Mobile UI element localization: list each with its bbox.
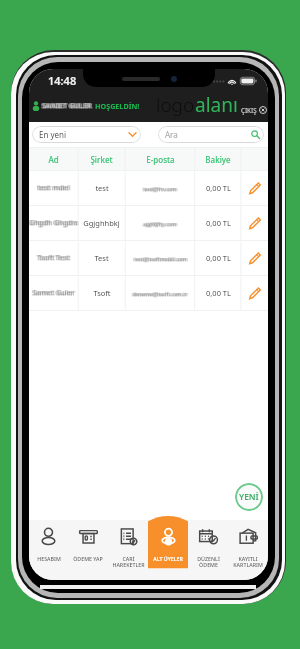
staticText: ajgfdjfty.com (143, 220, 177, 227)
staticText: deneme@tsoft.com.tr (133, 290, 189, 297)
staticText: Bakiye (205, 154, 231, 165)
staticText: ajgfdjfty.com (144, 221, 178, 228)
button[interactable]: Düzenle (246, 214, 264, 232)
staticText: test@frv.com (143, 185, 177, 192)
button[interactable]: Tsoft Test (29, 241, 268, 275)
staticText: test@tsoftmobil.com (133, 255, 186, 262)
staticText: SANIET GULER (41, 101, 91, 111)
staticText: test@frv.com (142, 186, 176, 193)
staticText: Tsoft Test (38, 253, 71, 263)
staticText: Ghgdh Ghgdra (30, 219, 79, 229)
staticText: Ghgdh Ghgdra (30, 218, 79, 228)
staticText: ajgfdjfty.com (142, 220, 176, 227)
button[interactable]: En yeni (32, 126, 141, 143)
staticText: 14:48 (48, 73, 77, 88)
staticText: Ghgdh Ghgdra (29, 218, 77, 228)
staticText: HOŞGELDİN! (95, 101, 140, 111)
staticText: ajgfdjfty.com (142, 221, 176, 228)
staticText: deneme@tsoft.com.tr (133, 290, 189, 297)
staticText: test mdel (38, 184, 71, 194)
staticText: Ghgdh Ghgdra (29, 218, 77, 228)
staticText: Ghgdh Ghgdra (29, 219, 77, 229)
staticText: test mdel (36, 184, 69, 194)
button[interactable]: ALT ÜYELER (148, 520, 188, 580)
button[interactable]: Samet Guler (29, 276, 268, 310)
staticText: deneme@tsoft.com.tr (131, 290, 187, 297)
staticText: deneme@tsoft.com.tr (131, 290, 187, 297)
staticText: Şirket (90, 154, 113, 165)
staticText: SANIET GULER (42, 101, 92, 111)
staticText: Tsoft Test (36, 253, 69, 263)
button[interactable]: CARİ HAREKETLER (108, 520, 148, 580)
staticText: Samet Guler (31, 288, 74, 298)
staticText: deneme@tsoft.com.tr (133, 291, 189, 298)
staticText: Ad (48, 154, 59, 165)
staticText: ÖDEME YAP (73, 555, 103, 562)
staticText: DÜZENLİ ÖDEME (197, 555, 220, 569)
button[interactable]: HESABIM (29, 520, 68, 580)
staticText: SANIET GULER (43, 102, 93, 112)
button[interactable]: KAYITLI KARTLARIM (228, 520, 268, 580)
staticText: KAYITLI KARTLARIM (233, 555, 263, 569)
staticText: Tsoft (93, 288, 111, 298)
staticText: CARİ HAREKETLER (112, 555, 145, 569)
staticText: test mdel (37, 183, 70, 193)
staticText: ÇIKIŞ (241, 106, 257, 114)
staticText: test@frv.com (144, 186, 178, 193)
staticText: Tsoft Test (37, 253, 70, 263)
button[interactable]: YENİ (235, 483, 263, 511)
staticText: deneme@tsoft.com.tr (132, 290, 188, 297)
staticText: logo (156, 92, 195, 118)
button[interactable]: Düzenle (246, 249, 264, 267)
staticText: Ara (165, 129, 178, 140)
staticText: SANIET GULER (41, 102, 91, 112)
staticText: test@tsoftmobil.com (133, 256, 186, 263)
staticText: SANIET GULER (41, 101, 91, 111)
staticText: HESABIM (37, 555, 61, 562)
button[interactable]: Çıkış (241, 106, 267, 114)
staticText: SANIET GULER (43, 101, 93, 111)
staticText: 0,00 TL (206, 218, 231, 228)
staticText: alanı (195, 92, 238, 118)
staticText: test mdel (36, 183, 69, 193)
staticText: ALT ÜYELER (153, 555, 183, 562)
staticText: Samet Guler (31, 288, 74, 298)
staticText: Tsoft Test (36, 253, 69, 263)
staticText: Samet Guler (32, 288, 75, 298)
button[interactable]: Düzenle (246, 179, 264, 197)
staticText: Samet Guler (31, 289, 74, 299)
button[interactable]: Ghgdh Ghgdra (29, 206, 268, 240)
staticText: Test (94, 253, 109, 263)
staticText: Ggjghhbkj (83, 218, 120, 228)
staticText: test@tsoftmobil.com (135, 255, 188, 262)
staticText: Samet Guler (33, 289, 76, 299)
staticText: Tsoft Test (38, 254, 71, 264)
staticText: test@frv.com (142, 185, 176, 192)
staticText: Ghgdh Ghgdra (29, 218, 78, 228)
button[interactable]: ÖDEME YAP (68, 520, 108, 580)
staticText: test@tsoftmobil.com (133, 255, 186, 262)
staticText: test mdel (36, 183, 69, 193)
staticText: test@tsoftmobil.com (135, 255, 188, 262)
staticText: E-posta (146, 154, 175, 165)
staticText: test@frv.com (144, 185, 178, 192)
button[interactable]: DÜZENLİ ÖDEME (188, 520, 228, 580)
staticText: YENİ (239, 491, 259, 503)
staticText: En yeni (39, 129, 67, 140)
staticText: ajgfdjfty.com (144, 220, 178, 227)
button[interactable]: Düzenle (246, 284, 264, 302)
staticText: test mdel (38, 183, 71, 193)
button[interactable]: Ara (158, 126, 264, 143)
staticText: Samet Guler (33, 288, 76, 298)
staticText: test@tsoftmobil.com (134, 255, 187, 262)
staticText: Samet Guler (33, 288, 76, 298)
staticText: 0,00 TL (206, 253, 231, 263)
staticText: 0,00 TL (206, 288, 231, 298)
staticText: test mdel (38, 183, 71, 193)
button[interactable]: test mdel (29, 171, 268, 205)
staticText: Tsoft Test (38, 253, 71, 263)
staticText: test@frv.com (144, 185, 178, 192)
staticText: ajgfdjfty.com (144, 220, 178, 227)
staticText: Tsoft Test (36, 254, 69, 264)
staticText: test@frv.com (142, 185, 176, 192)
